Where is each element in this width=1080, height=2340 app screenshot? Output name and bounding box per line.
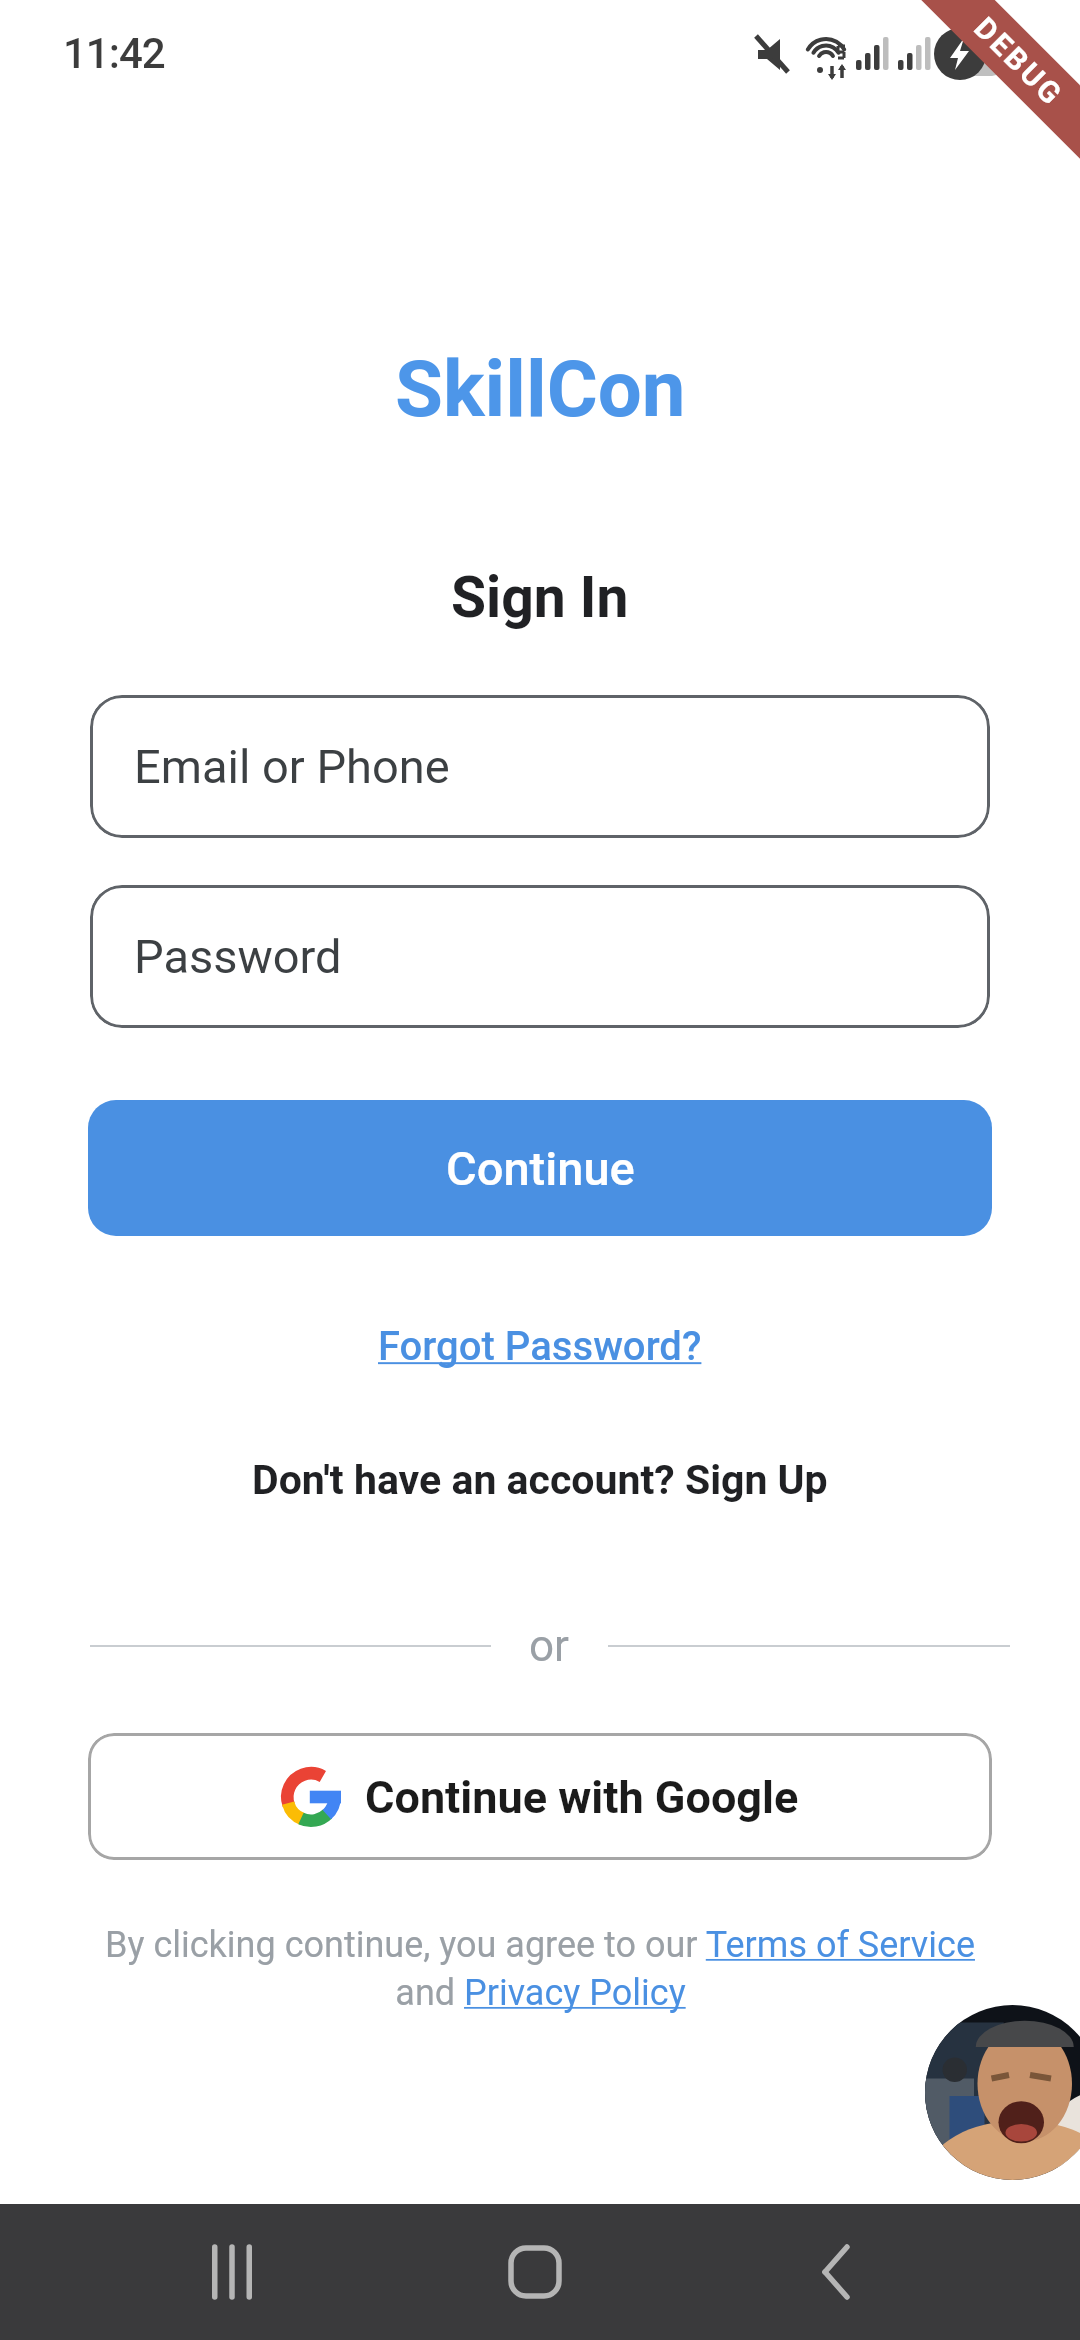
button[interactable]: Don't have an account? Sign Up [252, 1456, 828, 1504]
staticText: 11:42 [63, 29, 165, 78]
staticText: Forgot Password? [378, 1323, 702, 1370]
button[interactable] [152, 2204, 312, 2340]
staticText: Sign In [451, 564, 629, 631]
button[interactable]: Forgot Password? [378, 1323, 702, 1370]
staticText: Email or Phone [134, 739, 450, 794]
staticText: DEBUG [967, 10, 1071, 113]
button[interactable]: Password [90, 885, 990, 1028]
button[interactable]: Continue with Google [88, 1733, 992, 1860]
staticText: Continue [446, 1141, 635, 1196]
staticText: Continue with Google [365, 1771, 799, 1824]
button[interactable]: Email or Phone [90, 695, 990, 838]
button[interactable] [925, 2005, 1080, 2180]
button[interactable] [756, 2204, 916, 2340]
button[interactable] [455, 2204, 615, 2340]
staticText: Password [134, 929, 342, 984]
staticText: By clicking continue, you agree to our T… [105, 1924, 975, 1966]
staticText: and Privacy Policy [395, 1972, 686, 2014]
staticText: Don't have an account? Sign Up [252, 1456, 828, 1504]
staticText: or [529, 1620, 570, 1672]
staticText: SkillCon [395, 344, 686, 435]
button[interactable]: Continue [88, 1100, 992, 1236]
